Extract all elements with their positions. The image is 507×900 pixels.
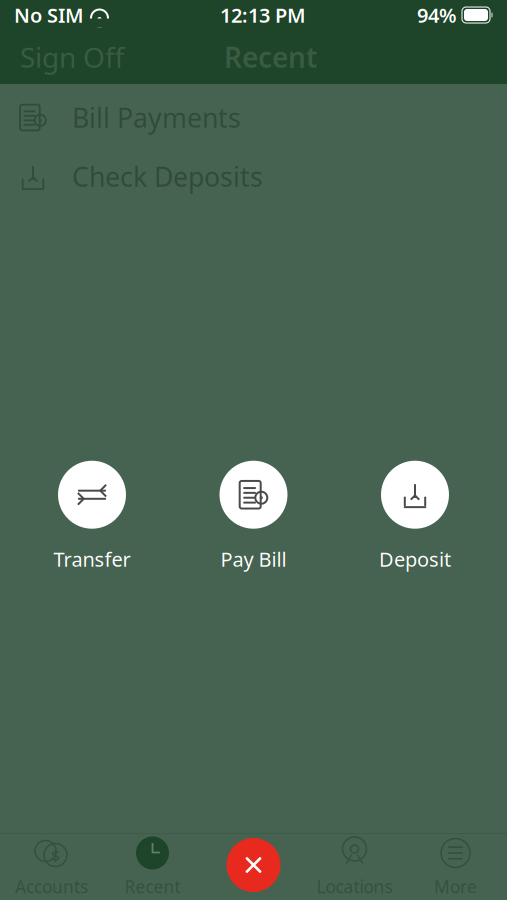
button[interactable]: Deposit	[355, 461, 475, 572]
button[interactable]: Locations	[304, 834, 405, 900]
button[interactable]: Recent	[102, 834, 203, 900]
staticText: Deposit	[379, 546, 451, 572]
staticText: Sign Off	[20, 38, 124, 76]
staticText: Locations	[316, 875, 392, 898]
button[interactable]: Pay Bill	[193, 461, 313, 572]
button[interactable]: More	[405, 834, 506, 900]
button[interactable]: Transfer	[32, 461, 152, 572]
staticText: Transfer	[53, 546, 130, 572]
staticText: More	[434, 875, 477, 898]
button[interactable]: $	[1, 834, 102, 900]
staticText: $	[51, 844, 60, 866]
staticText: Accounts	[15, 875, 88, 898]
staticText: Bill Payments	[72, 100, 241, 135]
button[interactable]: Bill Payments	[0, 88, 507, 147]
button[interactable]: Close	[221, 833, 285, 897]
button[interactable]: Check Deposits	[0, 147, 507, 206]
staticText: Check Deposits	[72, 159, 263, 194]
button[interactable]: Sign Off	[0, 30, 144, 84]
staticText: Recent	[124, 875, 180, 898]
staticText: No SIM	[14, 2, 84, 28]
staticText: Recent	[224, 38, 317, 76]
staticText: 94%	[417, 2, 457, 28]
staticText: Pay Bill	[220, 546, 286, 572]
staticText: 12:13 PM	[220, 2, 306, 28]
